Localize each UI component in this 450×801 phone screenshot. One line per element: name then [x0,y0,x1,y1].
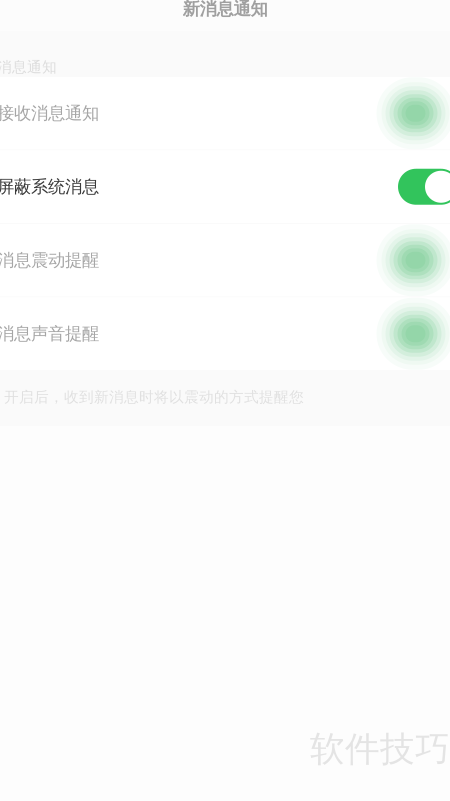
button[interactable]: 新消息通知 [182,0,267,33]
staticText: 消息通知 [0,58,57,76]
staticText: 软件技巧 [310,727,450,771]
button[interactable]: 消息声音提醒 [0,297,450,370]
button[interactable]: 消息震动提醒 [0,224,450,296]
staticText: 接收消息通知 [0,102,99,124]
button[interactable]: 屏蔽系统消息 [0,150,450,223]
button[interactable]: 接收消息通知 [0,77,450,149]
staticText: 开启后，收到新消息时将以震动的方式提醒您 [4,388,304,406]
staticText: 屏蔽系统消息 [0,176,99,198]
staticText: 新消息通知 [182,0,267,20]
staticText: 消息声音提醒 [0,323,99,345]
button[interactable]: 开启后，收到新消息时将以震动的方式提醒您 [0,370,450,426]
staticText: 消息震动提醒 [0,249,99,271]
